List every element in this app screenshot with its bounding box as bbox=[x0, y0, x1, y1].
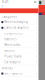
staticText: Car chargers bbox=[4, 60, 20, 64]
staticText: NFC Payments bbox=[4, 72, 22, 75]
button[interactable]: Power banks bbox=[0, 54, 38, 59]
staticText: Power banks bbox=[4, 55, 21, 58]
staticText: Wireless kits bbox=[4, 43, 20, 47]
button[interactable]: Cables & adapters bbox=[0, 25, 38, 31]
staticText: Categories bbox=[2, 15, 17, 19]
staticText: Wireless charging bbox=[4, 20, 28, 24]
staticText: Mounts bbox=[4, 49, 14, 52]
staticText: Batteries bbox=[4, 37, 16, 41]
staticText: Components bbox=[4, 32, 22, 35]
button[interactable]: NFC Payments bbox=[0, 71, 38, 76]
button[interactable]: Batteries bbox=[0, 36, 38, 42]
button[interactable]: Components bbox=[0, 31, 38, 36]
staticText: Cables & adapters bbox=[4, 26, 28, 29]
button[interactable]: Wireless charging bbox=[0, 19, 38, 25]
staticText: 9:41 bbox=[2, 0, 9, 4]
button[interactable]: Mounts bbox=[0, 48, 38, 54]
button[interactable]: Back bbox=[0, 4, 6, 8]
button[interactable]: Wireless kits bbox=[0, 42, 38, 48]
button[interactable]: Car chargers bbox=[0, 59, 38, 65]
staticText: Settings bbox=[2, 66, 13, 70]
